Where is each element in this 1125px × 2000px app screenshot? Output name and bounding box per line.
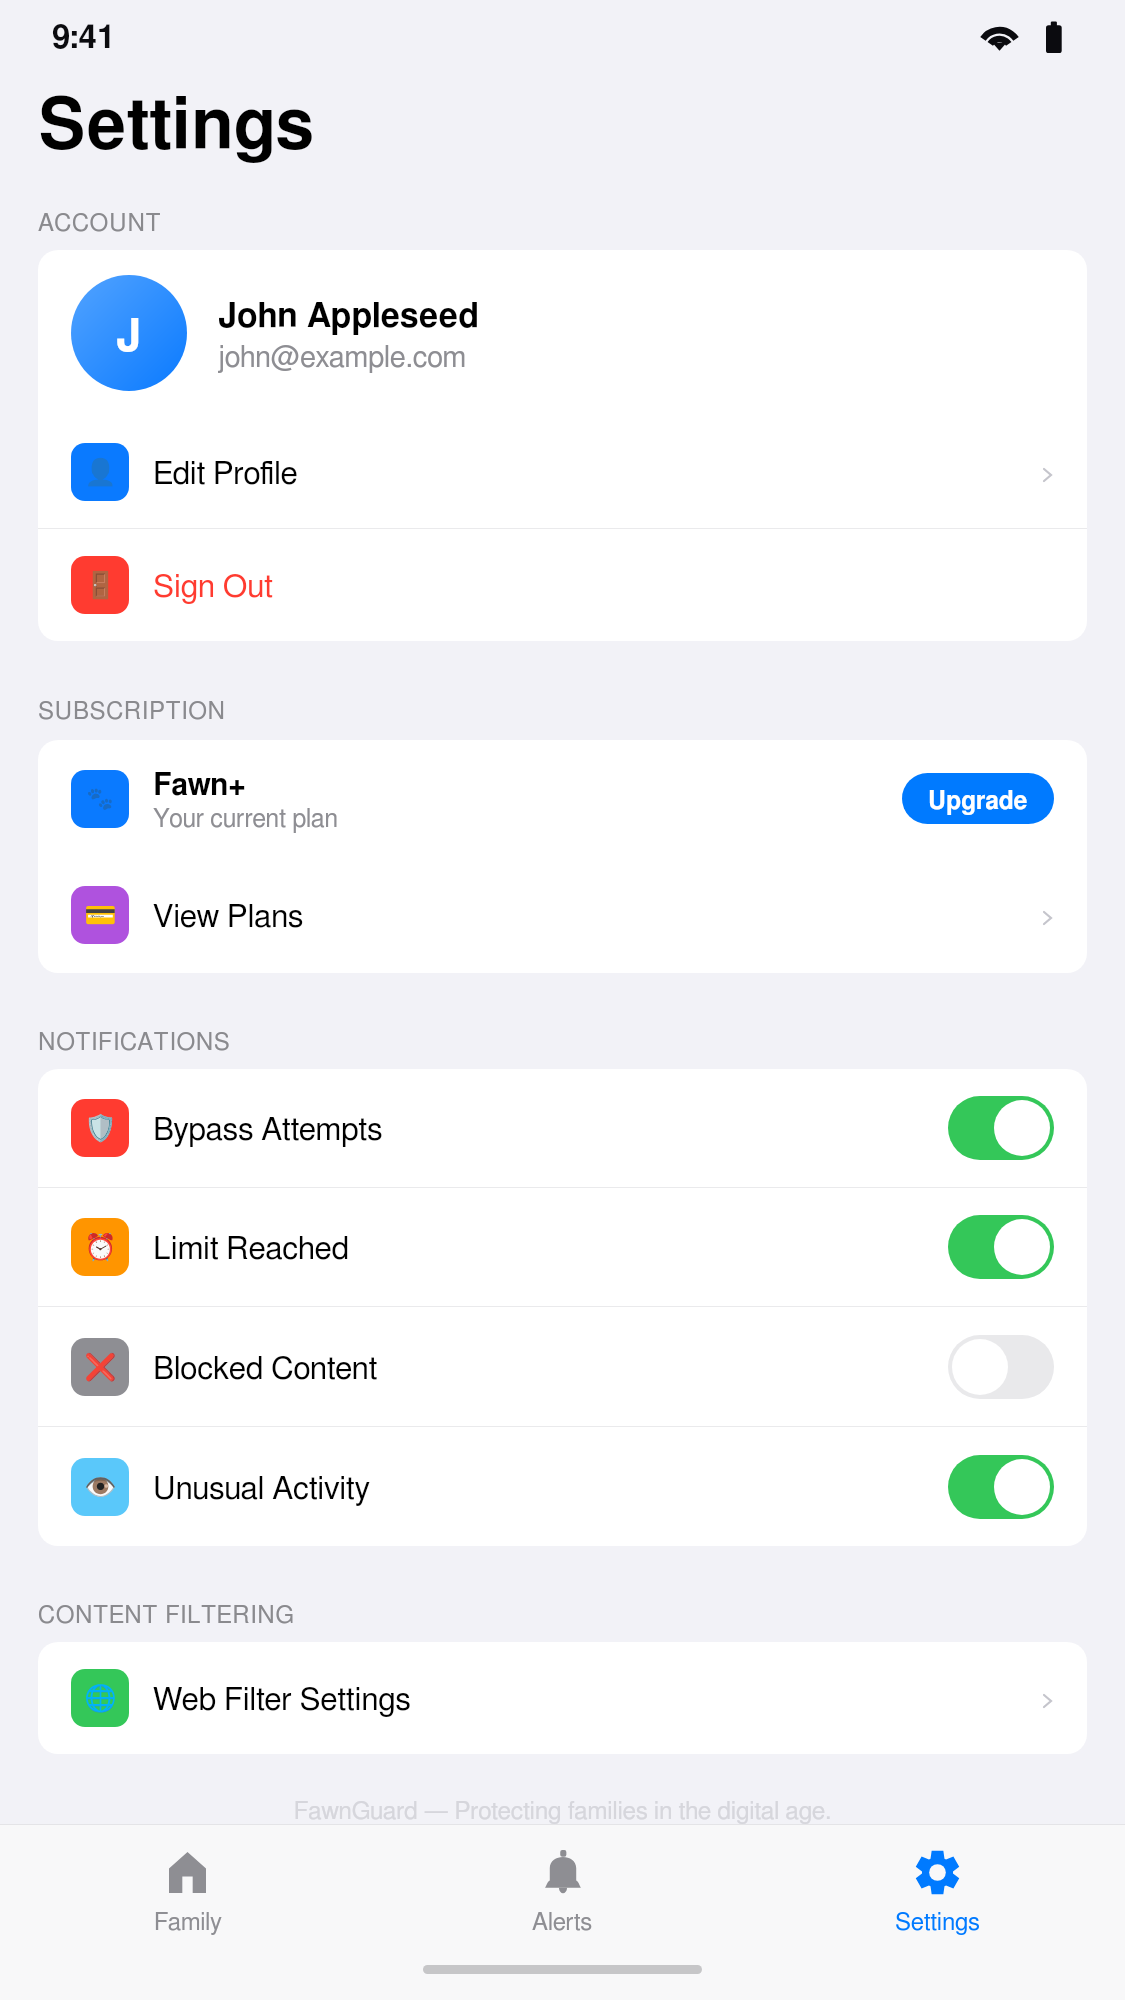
other: Settings (916, 1850, 959, 1895)
button[interactable]: 🛡️ (38, 1069, 1087, 1187)
staticText: 🐾 (86, 786, 114, 812)
button[interactable]: 🚪 (38, 529, 1087, 641)
other: Alerts (545, 1850, 581, 1895)
button[interactable]: Settings (750, 1824, 1125, 2000)
staticText: Blocked Content (153, 1354, 378, 1386)
staticText: 🌐 (84, 1683, 117, 1713)
staticText: 💳 (84, 900, 117, 930)
staticText: ⏰ (84, 1232, 117, 1262)
button[interactable]: Upgrade (902, 773, 1054, 824)
button[interactable]: ⏰ (38, 1188, 1087, 1306)
staticText: ACCOUNT (38, 212, 162, 236)
button[interactable]: 🐾 (38, 740, 1087, 857)
staticText: Edit Profile (153, 459, 298, 491)
staticText: Settings (38, 92, 315, 162)
staticText: Sign Out (153, 572, 273, 604)
staticText: john@example.com (218, 344, 467, 373)
button[interactable]: 🌐 (38, 1642, 1087, 1754)
staticText: Fawn+ (153, 771, 246, 801)
staticText: Settings (895, 1911, 980, 1935)
staticText: 9:41 (52, 22, 116, 55)
button[interactable]: 👤 (38, 416, 1087, 528)
staticText: Alerts (532, 1911, 593, 1935)
button[interactable]: Off (948, 1335, 1054, 1399)
staticText: Web Filter Settings (153, 1685, 411, 1717)
staticText: J (116, 315, 142, 360)
other: Family (169, 1852, 206, 1893)
button[interactable]: J (38, 250, 1087, 416)
button[interactable]: Alerts (375, 1824, 750, 2000)
staticText: 👤 (84, 457, 117, 487)
staticText: FawnGuard — Protecting families in the d… (0, 1799, 1125, 1824)
staticText: 🛡️ (84, 1113, 117, 1143)
staticText: CONTENT FILTERING (38, 1604, 295, 1628)
other: Battery (1046, 21, 1063, 54)
staticText: ❌ (84, 1352, 117, 1382)
staticText: 🚪 (84, 570, 117, 600)
button[interactable]: 💳 (38, 857, 1087, 973)
button[interactable]: Family (0, 1824, 375, 2000)
button[interactable]: 👁️ (38, 1427, 1087, 1546)
staticText: Unusual Activity (153, 1474, 370, 1506)
other: Wi-Fi (985, 24, 1014, 52)
staticText: Your current plan (153, 807, 338, 832)
staticText: Upgrade (928, 789, 1028, 814)
staticText: Limit Reached (153, 1234, 350, 1266)
button[interactable]: On (948, 1215, 1054, 1279)
button[interactable]: On (948, 1455, 1054, 1519)
button[interactable]: On (948, 1096, 1054, 1160)
staticText: Family (154, 1911, 222, 1935)
button[interactable]: ❌ (38, 1307, 1087, 1426)
staticText: John Appleseed (218, 300, 480, 334)
staticText: NOTIFICATIONS (38, 1031, 231, 1055)
staticText: View Plans (153, 902, 304, 934)
staticText: 👁️ (84, 1472, 117, 1502)
staticText: Bypass Attempts (153, 1115, 383, 1147)
staticText: SUBSCRIPTION (38, 700, 226, 724)
